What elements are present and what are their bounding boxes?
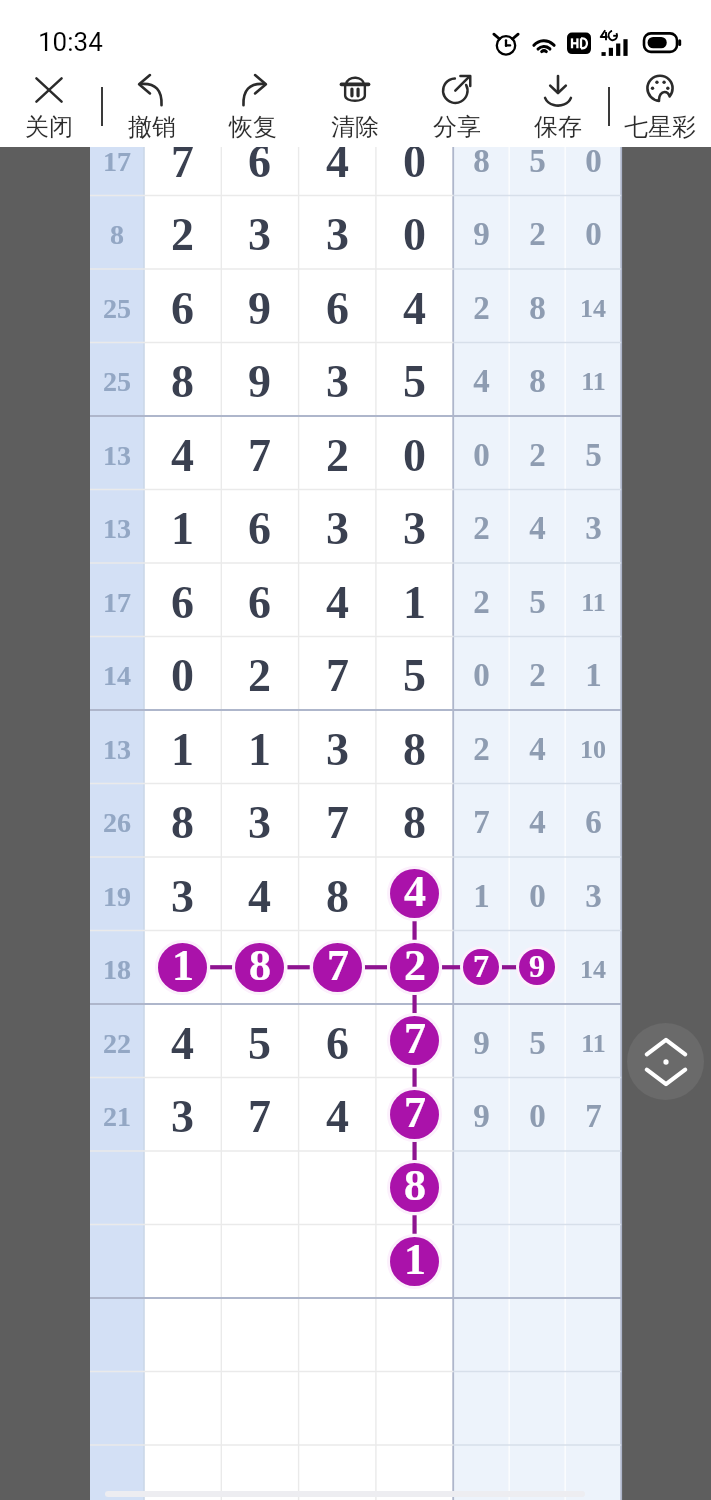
button[interactable]: 8	[376, 785, 453, 859]
button[interactable]: 5	[509, 124, 565, 198]
button[interactable]: 7	[299, 785, 376, 859]
button[interactable]: 2	[453, 271, 509, 345]
button[interactable]: 2	[144, 197, 221, 271]
button[interactable]: 4	[144, 418, 221, 492]
button[interactable]: 8	[453, 124, 509, 198]
button[interactable]: 2	[509, 197, 565, 271]
button[interactable]: 7	[221, 418, 298, 492]
button[interactable]: 3	[299, 712, 376, 786]
button[interactable]: 4	[299, 1079, 376, 1153]
button[interactable]: 0	[565, 197, 621, 271]
button[interactable]: 17	[90, 124, 144, 198]
button[interactable]: 分享	[409, 73, 505, 147]
button[interactable]: 9	[453, 197, 509, 271]
button[interactable]: 6	[221, 491, 298, 565]
button[interactable]: 0	[453, 638, 509, 712]
button[interactable]: 0	[565, 124, 621, 198]
button[interactable]: 8	[376, 712, 453, 786]
button[interactable]: 1	[221, 712, 298, 786]
button[interactable]: 4	[299, 124, 376, 198]
button[interactable]: 5	[509, 1006, 565, 1080]
button[interactable]: 9	[221, 344, 298, 418]
button[interactable]: 恢复	[205, 73, 301, 147]
button[interactable]: 8	[390, 1163, 439, 1212]
button[interactable]: 4	[509, 785, 565, 859]
button[interactable]: 0	[376, 124, 453, 198]
button[interactable]: 2	[299, 418, 376, 492]
button[interactable]: 1	[390, 1237, 439, 1286]
button[interactable]: 3	[565, 859, 621, 933]
button[interactable]: 2	[453, 565, 509, 639]
button[interactable]: 3	[376, 491, 453, 565]
button[interactable]: 7	[565, 1079, 621, 1153]
button[interactable]: 17	[90, 565, 144, 639]
button[interactable]: 25	[90, 344, 144, 418]
button[interactable]: 14	[90, 638, 144, 712]
button[interactable]: 6	[144, 271, 221, 345]
button[interactable]: 4	[144, 1006, 221, 1080]
button[interactable]: 13	[90, 418, 144, 492]
button[interactable]: 8	[90, 197, 144, 271]
button[interactable]: 6	[299, 1006, 376, 1080]
button[interactable]: 14	[565, 932, 621, 1006]
button[interactable]: 8	[509, 344, 565, 418]
button[interactable]: 1	[144, 712, 221, 786]
button[interactable]: 6	[144, 565, 221, 639]
button[interactable]: 3	[565, 491, 621, 565]
button[interactable]: 9	[221, 271, 298, 345]
button[interactable]: 3	[299, 491, 376, 565]
button[interactable]: 13	[90, 712, 144, 786]
button[interactable]: 4	[453, 344, 509, 418]
button[interactable]: 4	[376, 271, 453, 345]
button[interactable]: 5	[376, 638, 453, 712]
button[interactable]: 7	[453, 785, 509, 859]
button[interactable]: 4	[221, 859, 298, 933]
button[interactable]: 21	[90, 1079, 144, 1153]
button[interactable]: 撤销	[104, 73, 200, 147]
button[interactable]: 3	[144, 1079, 221, 1153]
button[interactable]: 5	[376, 344, 453, 418]
button[interactable]: 关闭	[1, 73, 97, 147]
button[interactable]: 7	[313, 943, 362, 992]
button[interactable]: 6	[565, 785, 621, 859]
button[interactable]: 4	[299, 565, 376, 639]
button[interactable]: 2	[453, 712, 509, 786]
button[interactable]: 2	[509, 638, 565, 712]
button[interactable]: 8	[509, 271, 565, 345]
button[interactable]: 5	[509, 565, 565, 639]
button[interactable]: 1	[453, 859, 509, 933]
button[interactable]: 3	[221, 785, 298, 859]
button[interactable]: 25	[90, 271, 144, 345]
button[interactable]: 3	[221, 197, 298, 271]
button[interactable]: 9	[519, 949, 555, 985]
button[interactable]: 7	[299, 638, 376, 712]
button[interactable]: 4	[509, 712, 565, 786]
button[interactable]: 0	[509, 859, 565, 933]
button[interactable]: 6	[221, 124, 298, 198]
button[interactable]: Scroll up or down	[627, 1023, 704, 1100]
button[interactable]: 7	[463, 949, 499, 985]
button[interactable]: 4	[509, 491, 565, 565]
button[interactable]: 9	[453, 1006, 509, 1080]
button[interactable]: 5	[565, 418, 621, 492]
button[interactable]: 7	[144, 124, 221, 198]
button[interactable]: 1	[158, 943, 207, 992]
button[interactable]: 清除	[307, 73, 403, 147]
button[interactable]: 2	[453, 491, 509, 565]
button[interactable]: 14	[565, 271, 621, 345]
button[interactable]: 11	[565, 344, 621, 418]
button[interactable]: 13	[90, 491, 144, 565]
button[interactable]: 1	[565, 638, 621, 712]
button[interactable]: 8	[299, 859, 376, 933]
button[interactable]: 8	[144, 344, 221, 418]
button[interactable]: 1	[144, 491, 221, 565]
button[interactable]: 22	[90, 1006, 144, 1080]
button[interactable]: 8	[144, 785, 221, 859]
button[interactable]: 2	[221, 638, 298, 712]
button[interactable]: 2	[390, 943, 439, 992]
button[interactable]: 7	[390, 1090, 439, 1139]
button[interactable]: 6	[299, 271, 376, 345]
button[interactable]: 11	[565, 1006, 621, 1080]
button[interactable]: 2	[509, 418, 565, 492]
button[interactable]: 5	[221, 1006, 298, 1080]
